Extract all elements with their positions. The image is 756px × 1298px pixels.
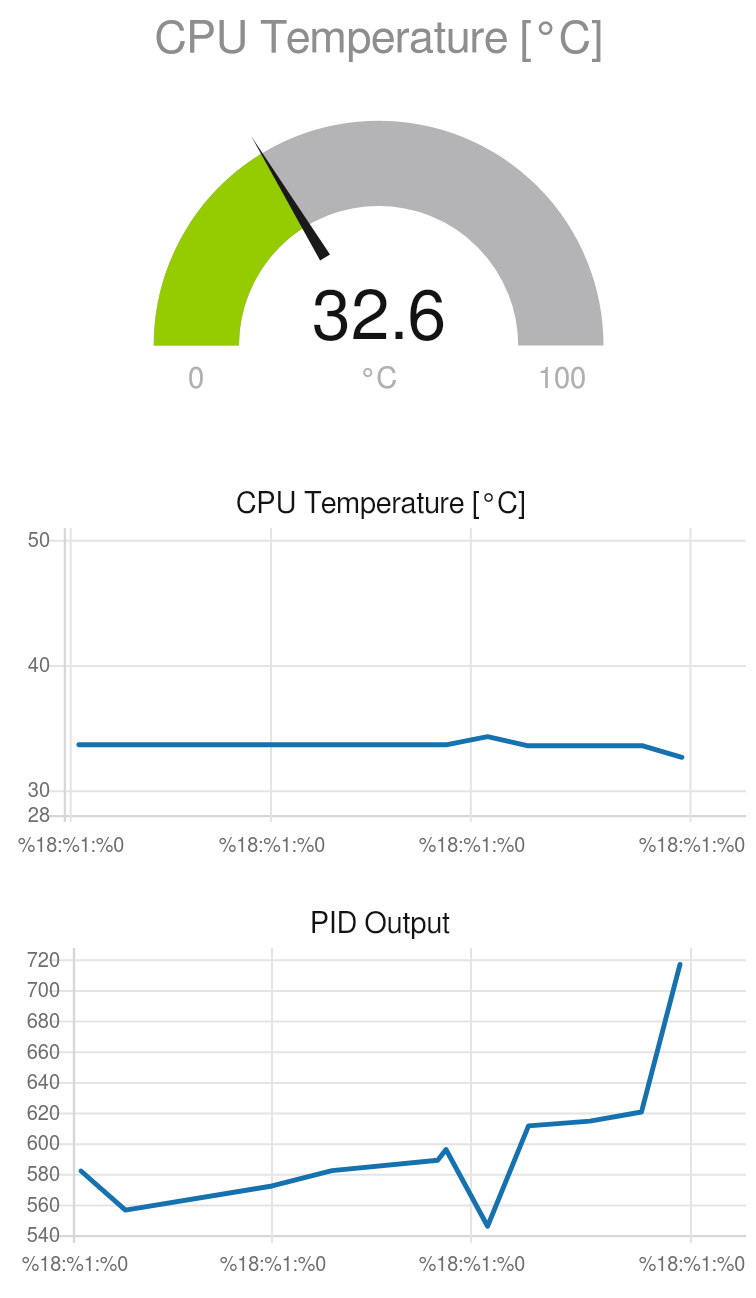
staticText: PID Output bbox=[130, 910, 630, 939]
staticText: 28 bbox=[0, 806, 50, 826]
staticText: 600 bbox=[0, 1134, 60, 1154]
staticText: 32.6 bbox=[179, 283, 579, 353]
button[interactable]: CPU temperature gauge, 32.6 degrees Cels… bbox=[0, 0, 756, 455]
staticText: 560 bbox=[0, 1196, 60, 1216]
staticText: %18:%1:%0 bbox=[0, 836, 181, 856]
button[interactable]: PID output history chart bbox=[0, 890, 756, 1298]
staticText: 620 bbox=[0, 1104, 60, 1124]
staticText: %18:%1:%0 bbox=[162, 836, 382, 856]
staticText: 660 bbox=[0, 1043, 60, 1063]
staticText: 40 bbox=[0, 656, 50, 676]
staticText: 680 bbox=[0, 1012, 60, 1032]
staticText: 700 bbox=[0, 981, 60, 1001]
staticText: 100 bbox=[502, 365, 622, 394]
staticText: %18:%1:%0 bbox=[362, 1255, 582, 1275]
button[interactable]: CPU temperature history chart bbox=[0, 460, 756, 880]
staticText: 640 bbox=[0, 1073, 60, 1093]
staticText: 0 bbox=[136, 365, 256, 394]
staticText: 540 bbox=[0, 1226, 60, 1246]
staticText: %18:%1:%0 bbox=[362, 836, 582, 856]
staticText: CPU Temperature [°C] bbox=[29, 16, 729, 61]
staticText: °C bbox=[318, 365, 438, 394]
staticText: 580 bbox=[0, 1165, 60, 1185]
staticText: %18:%1:%0 bbox=[163, 1255, 383, 1275]
staticText: %18:%1:%0 bbox=[582, 836, 756, 856]
staticText: 720 bbox=[0, 951, 60, 971]
staticText: CPU Temperature [°C] bbox=[31, 490, 731, 519]
staticText: %18:%1:%0 bbox=[0, 1255, 185, 1275]
staticText: %18:%1:%0 bbox=[582, 1255, 756, 1275]
staticText: 50 bbox=[0, 531, 50, 551]
staticText: 30 bbox=[0, 781, 50, 801]
